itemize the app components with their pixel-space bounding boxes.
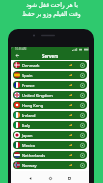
button[interactable]: Recents [67, 176, 72, 181]
staticText: Norway [22, 163, 37, 168]
staticText: وقت الفيلم وزو بر حفظ [22, 10, 81, 18]
staticText: France [22, 83, 35, 88]
button[interactable]: Japan [13, 131, 87, 139]
button[interactable]: Mexico [13, 141, 87, 149]
staticText: Mexico [22, 143, 36, 148]
button[interactable]: Norway [13, 161, 87, 169]
button[interactable]: Back [28, 176, 33, 181]
staticText: 10:36 AM [15, 47, 27, 51]
button[interactable]: Spain [13, 71, 87, 79]
button[interactable]: Denmark [13, 61, 87, 69]
staticText: Denmark [22, 63, 40, 68]
button[interactable]: Ireland [13, 111, 87, 119]
staticText: Hong Kong [22, 103, 44, 108]
staticText: Italy [22, 123, 31, 128]
staticText: Spain [22, 73, 33, 78]
staticText: Ireland [22, 113, 36, 118]
staticText: Servers [42, 53, 59, 59]
button[interactable]: Back [14, 52, 21, 59]
staticText: Japan [22, 133, 33, 138]
staticText: Netherlands [22, 153, 46, 158]
staticText: United Kingdom [22, 93, 53, 98]
button[interactable]: Italy [13, 121, 87, 129]
button[interactable]: United Kingdom [13, 91, 87, 99]
button[interactable]: France [13, 81, 87, 89]
staticText: با هر راحت قفل شود [26, 1, 78, 9]
button[interactable]: Home [48, 176, 53, 181]
button[interactable]: Netherlands [13, 151, 87, 159]
button[interactable]: Hong Kong [13, 101, 87, 109]
